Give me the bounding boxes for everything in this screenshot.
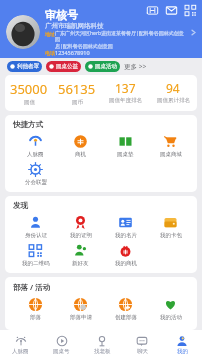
button[interactable]: 分会联盟 bbox=[13, 160, 58, 188]
staticText: 找老板 bbox=[94, 348, 111, 355]
button[interactable]: 部落 bbox=[13, 295, 58, 323]
button[interactable]: 我的名片 bbox=[103, 213, 148, 241]
staticText: 电话 bbox=[45, 50, 55, 56]
staticText: 圆值年度排名 bbox=[109, 97, 142, 104]
button[interactable]: 部落申请 bbox=[58, 295, 103, 323]
staticText: 137 bbox=[115, 80, 136, 96]
staticText: 发现 bbox=[13, 201, 28, 210]
staticText: 分会联盟 bbox=[25, 179, 47, 186]
staticText: 人脉圈 bbox=[27, 151, 44, 158]
button[interactable]: 更多 >> bbox=[124, 62, 147, 71]
staticText: 圆桌公益 bbox=[56, 63, 78, 70]
button[interactable]: 137 bbox=[101, 80, 149, 104]
button[interactable]: 创建部落 bbox=[103, 295, 148, 323]
staticText: 圆桌活动 bbox=[95, 63, 117, 70]
staticText: 我的活动 bbox=[160, 314, 182, 321]
button[interactable]: 圆桌公益 bbox=[46, 61, 81, 72]
staticText: 35000 bbox=[10, 80, 48, 98]
staticText: 商机 bbox=[75, 151, 86, 158]
button[interactable]: Contacts bbox=[146, 4, 159, 17]
staticText: 更多 >> bbox=[124, 62, 147, 71]
staticText: 我的商机 bbox=[115, 260, 137, 267]
button[interactable]: 新好友 bbox=[58, 241, 103, 269]
button[interactable]: Messages bbox=[165, 4, 178, 17]
staticText: 部落 / 活动 bbox=[13, 282, 51, 292]
button[interactable]: 我的卡包 bbox=[148, 213, 193, 241]
button[interactable]: 利他者罩 bbox=[7, 61, 42, 72]
staticText: 地址 bbox=[45, 31, 55, 37]
staticText: 我的证明 bbox=[70, 232, 92, 239]
button[interactable]: More profile bbox=[184, 6, 202, 58]
button[interactable]: 35000 bbox=[5, 80, 53, 106]
staticText: 利他者罩 bbox=[17, 63, 39, 70]
button[interactable]: 商机 bbox=[58, 132, 103, 160]
staticText: 94 bbox=[166, 80, 180, 96]
staticText: 快捷方式 bbox=[13, 120, 43, 129]
button[interactable]: 我的商机 bbox=[103, 241, 148, 269]
button[interactable]: 94 bbox=[149, 80, 197, 104]
button[interactable]: 56135 bbox=[53, 80, 101, 106]
button[interactable]: 圆桌商城 bbox=[148, 132, 193, 160]
staticText: 圆桌垫 bbox=[117, 151, 134, 158]
button[interactable]: 圆桌号 bbox=[41, 330, 82, 359]
staticText: 人脉圈 bbox=[12, 348, 29, 355]
staticText: 圆桌商城 bbox=[160, 151, 182, 158]
staticText: 我的卡包 bbox=[160, 232, 182, 239]
staticText: 我的二维码 bbox=[22, 260, 50, 267]
staticText: 圆桌号 bbox=[53, 348, 70, 355]
staticText: 部落 bbox=[30, 314, 41, 321]
button[interactable]: 圆桌活动 bbox=[85, 61, 120, 72]
button[interactable]: 我的活动 bbox=[148, 295, 193, 323]
staticText: 部落申请 bbox=[70, 314, 92, 321]
staticText: 审核号 bbox=[45, 8, 78, 22]
staticText: 新好友 bbox=[72, 260, 89, 267]
button[interactable]: 人脉圈 bbox=[0, 330, 41, 359]
staticText: 圆值累计排名 bbox=[157, 97, 190, 104]
staticText: 聊天 bbox=[137, 348, 148, 355]
button[interactable]: 我的二维码 bbox=[13, 241, 58, 269]
button[interactable]: 找老板 bbox=[82, 330, 122, 359]
staticText: 圆值 bbox=[24, 99, 35, 106]
staticText: 身份认证 bbox=[25, 232, 47, 239]
button[interactable]: 圆桌垫 bbox=[103, 132, 148, 160]
button[interactable] bbox=[6, 15, 40, 49]
staticText: 创建部落 bbox=[115, 314, 137, 321]
button[interactable]: 身份认证 bbox=[13, 213, 58, 241]
staticText: 广州市瑞凯网络科技 bbox=[45, 22, 104, 30]
button[interactable]: 人脉圈 bbox=[13, 132, 58, 160]
staticText: 我的名片 bbox=[115, 232, 137, 239]
button[interactable]: Scan QR code bbox=[184, 4, 197, 17]
staticText: 56135 bbox=[58, 80, 96, 98]
staticText: 12345678910 bbox=[55, 49, 90, 56]
button[interactable]: 我的证明 bbox=[58, 213, 103, 241]
button[interactable]: 我的 bbox=[162, 330, 202, 359]
staticText: 广东广州天河区herb进街道某餐餐厅|配料餐谷园林式创意园 店|配料餐谷园林式创… bbox=[55, 30, 184, 49]
staticText: 我的 bbox=[177, 348, 188, 355]
staticText: 圆币 bbox=[72, 99, 83, 106]
button[interactable]: 聊天 bbox=[122, 330, 162, 359]
